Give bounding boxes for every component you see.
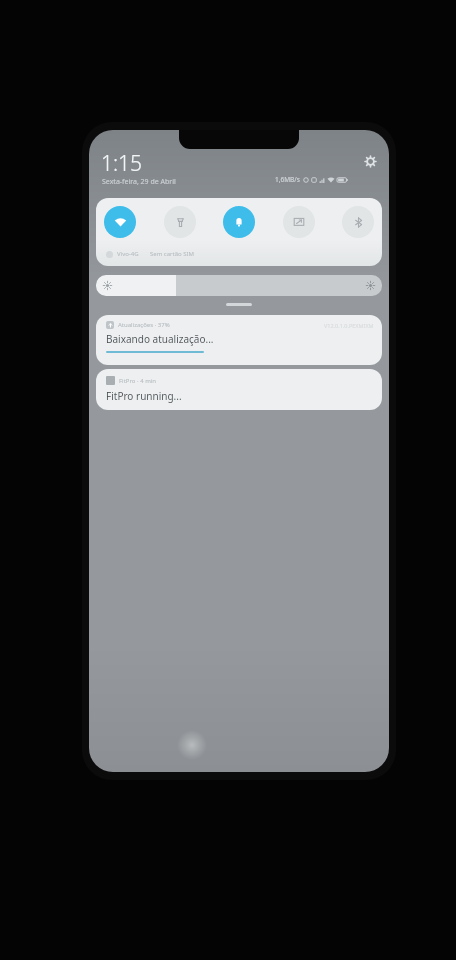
button[interactable]: Toggle off xyxy=(164,206,196,238)
staticText: 1,6MB/s xyxy=(275,175,300,184)
staticText: Vivo-4G xyxy=(117,250,139,258)
staticText: FitPro running... xyxy=(106,389,182,403)
staticText: V12.0.1.0.PEXMIXM xyxy=(324,322,374,329)
button[interactable]: Atualizações · 37% xyxy=(96,315,382,365)
staticText: Atualizações · 37% xyxy=(118,321,170,329)
staticText: Sexta-feira, 29 de Abril xyxy=(102,177,176,187)
staticText: FitPro · 4 min xyxy=(119,377,157,385)
button[interactable]: Toggle on xyxy=(223,206,255,238)
staticText: Baixando atualização... xyxy=(106,332,214,346)
button[interactable]: Toggle on xyxy=(104,206,136,238)
button[interactable]: Toggle off xyxy=(283,206,315,238)
button[interactable]: FitPro · 4 min xyxy=(96,369,382,410)
button[interactable]: Settings xyxy=(361,152,379,170)
button[interactable]: Toggle off xyxy=(342,206,374,238)
staticText: Sem cartão SIM xyxy=(150,250,195,258)
staticText: 1:15 xyxy=(101,149,143,178)
button[interactable] xyxy=(96,275,382,296)
